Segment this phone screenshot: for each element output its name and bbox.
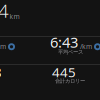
staticText: 平均ペース <box>58 49 83 55</box>
staticText: 8 <box>0 63 2 81</box>
staticText: km <box>0 42 6 51</box>
staticText: /km <box>80 42 92 51</box>
staticText: 445 <box>52 63 76 81</box>
staticText: 6:43 <box>50 32 78 52</box>
staticText: 4 <box>0 0 9 23</box>
staticText: 合計カロリー <box>55 78 85 84</box>
staticText: km <box>9 12 19 21</box>
